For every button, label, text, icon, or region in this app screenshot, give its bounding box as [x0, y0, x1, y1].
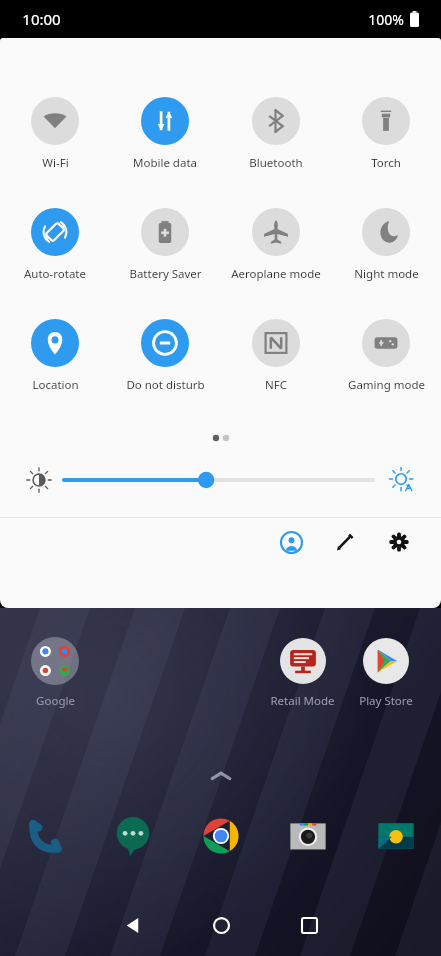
staticText: Do not disturb — [126, 377, 205, 393]
staticText: Google — [36, 693, 75, 709]
button[interactable]: Edit — [325, 522, 365, 562]
button[interactable]: Recents — [274, 894, 344, 956]
staticText: 100% — [368, 10, 404, 29]
button[interactable]: Phone — [20, 811, 70, 861]
button[interactable]: Back — [98, 894, 168, 956]
button[interactable]: NFC — [221, 319, 331, 393]
staticText: Battery Saver — [129, 266, 202, 282]
staticText: Auto-rotate — [24, 266, 86, 282]
button[interactable]: Home — [186, 894, 256, 956]
staticText: Gaming mode — [348, 377, 425, 393]
button[interactable]: Bluetooth — [221, 97, 331, 171]
button[interactable]: Gaming mode — [331, 319, 441, 393]
button[interactable]: Messages — [108, 811, 158, 861]
staticText: 10:00 — [22, 9, 61, 29]
button[interactable]: Auto-rotate — [0, 208, 110, 282]
button[interactable]: Chrome — [196, 811, 246, 861]
button[interactable]: Brightness slider — [64, 465, 373, 495]
staticText: NFC — [265, 377, 287, 393]
button[interactable]: Aeroplane mode — [221, 208, 331, 282]
button[interactable]: Night mode — [331, 208, 441, 282]
button[interactable]: Wi-Fi — [0, 97, 110, 171]
staticText: Play Store — [359, 693, 413, 709]
staticText: Torch — [371, 155, 401, 171]
button[interactable]: Play Store — [344, 636, 427, 709]
button[interactable]: Camera — [283, 811, 333, 861]
button[interactable]: Battery Saver — [110, 208, 220, 282]
button[interactable]: All apps — [208, 769, 234, 783]
button[interactable]: Photos — [371, 811, 421, 861]
button[interactable]: Torch — [331, 97, 441, 171]
staticText: Mobile data — [133, 155, 197, 171]
button[interactable]: Do not disturb — [110, 319, 220, 393]
button[interactable]: Retail Mode — [261, 636, 344, 709]
button[interactable]: Brightness — [20, 461, 58, 499]
staticText: Location — [32, 377, 79, 393]
button[interactable]: Google — [14, 636, 96, 709]
button[interactable]: User — [271, 522, 311, 562]
button[interactable]: Mobile data — [110, 97, 220, 171]
staticText: Retail Mode — [270, 693, 335, 709]
button[interactable]: Auto brightness — [383, 461, 421, 499]
button[interactable]: Settings — [379, 522, 419, 562]
staticText: Night mode — [354, 266, 419, 282]
button[interactable]: Location — [0, 319, 110, 393]
staticText: Bluetooth — [249, 155, 303, 171]
staticText: Wi-Fi — [42, 155, 69, 171]
staticText: Aeroplane mode — [231, 266, 321, 282]
